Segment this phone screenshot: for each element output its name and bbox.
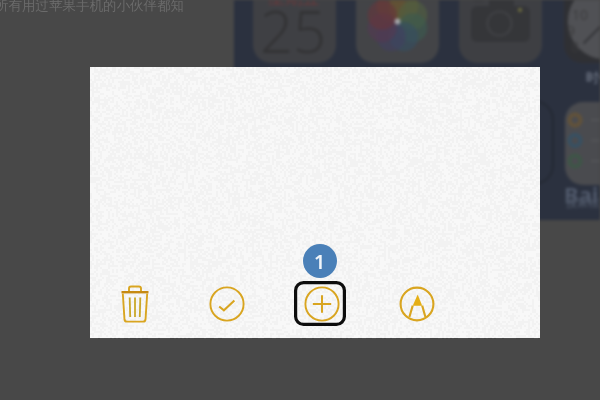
staticText: 搜索框 xyxy=(566,196,599,210)
staticText: 9 xyxy=(567,21,576,40)
staticText: 时钟 xyxy=(586,69,600,85)
staticText: 25 xyxy=(260,0,327,70)
button[interactable]: Add xyxy=(294,281,346,326)
staticText: 所有用过苹果手机的小伙伴都知 xyxy=(0,0,184,14)
staticText: 1 xyxy=(314,248,326,275)
staticText: Bai xyxy=(564,179,599,209)
staticText: 星期五 xyxy=(268,0,319,9)
staticText: 8 xyxy=(571,37,580,56)
